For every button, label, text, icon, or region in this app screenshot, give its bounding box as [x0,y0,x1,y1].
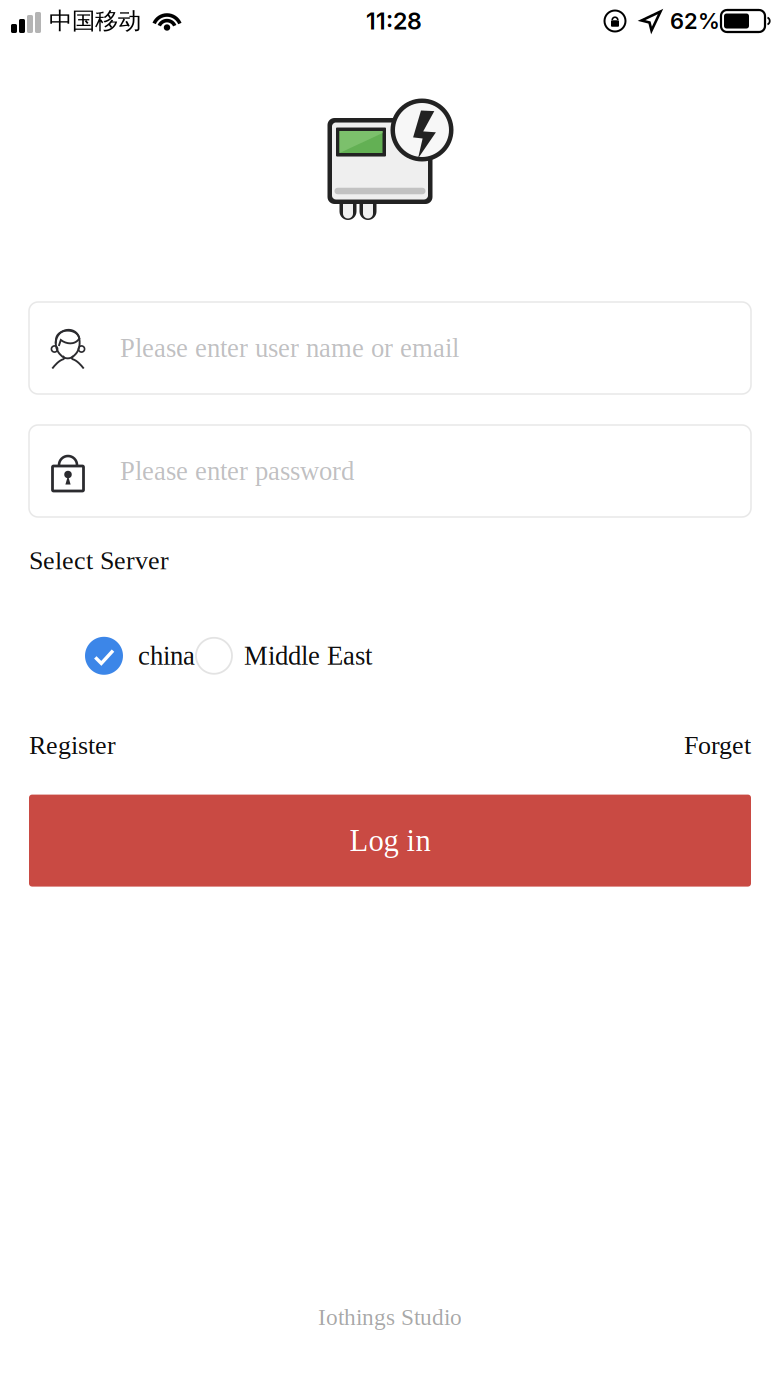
staticText: 中国移动 [49,6,141,36]
staticText: Select Server [29,546,169,575]
staticText: Log in [349,824,430,858]
staticText: Middle East [244,641,372,670]
staticText: 11:28 [366,7,422,35]
button[interactable]: china [85,634,195,678]
staticText: china [138,641,195,670]
button[interactable]: Middle East [196,634,372,678]
button[interactable]: Register [29,731,116,760]
staticText: Register [29,731,116,760]
staticText: Forget [684,731,751,760]
button[interactable]: Log in [29,795,751,887]
staticText: Please enter user name or email [120,333,459,363]
button[interactable]: Forget [684,731,751,760]
staticText: 62% [670,8,720,34]
staticText: Iothings Studio [318,1304,462,1330]
staticText: Please enter password [120,456,354,486]
